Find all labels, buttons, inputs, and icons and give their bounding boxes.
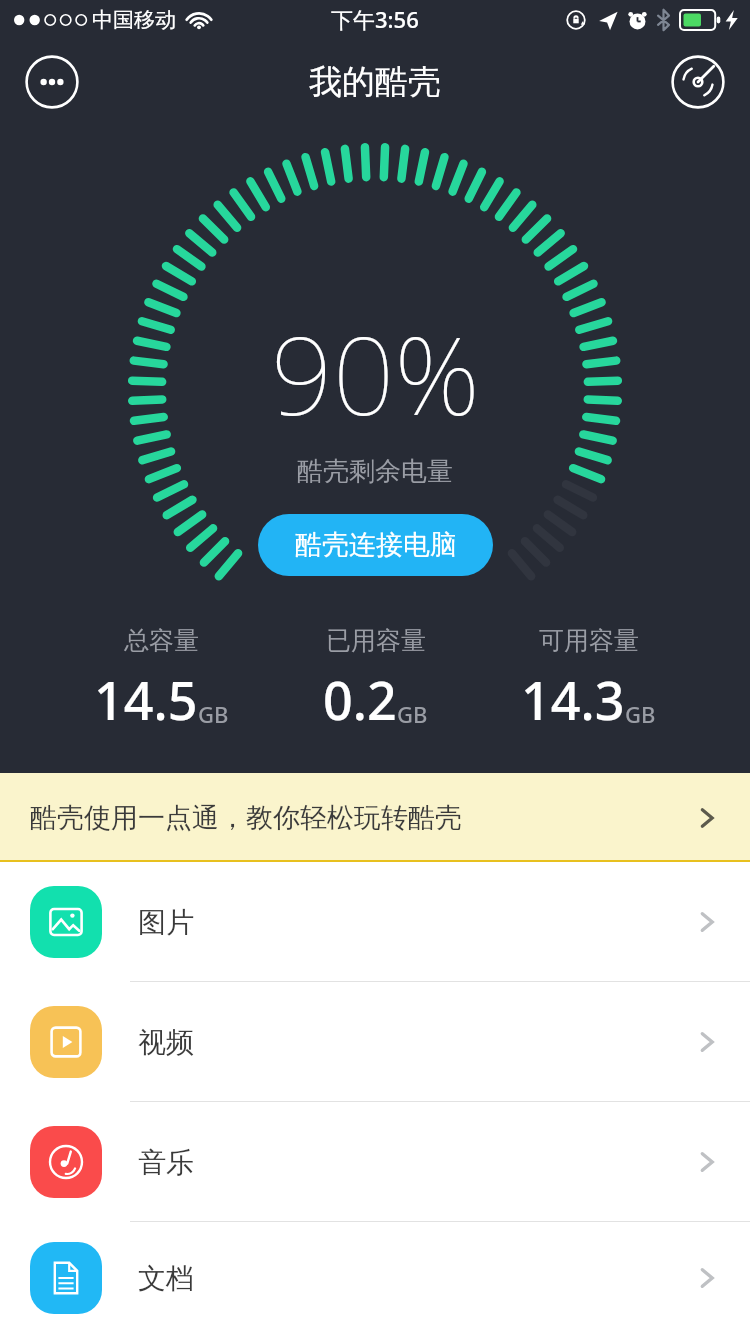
staticText: 0.2 [323,664,397,735]
staticText: 音乐 [138,1145,194,1180]
button[interactable]: 音乐 [0,1102,750,1222]
staticText: 14.5 [94,664,198,735]
staticText: 文档 [138,1261,194,1296]
staticText: 可用容量 [539,625,639,656]
staticText: 酷壳使用一点通，教你轻松玩转酷壳 [30,801,462,835]
staticText: 我的酷壳 [309,61,441,103]
staticText: 中国移动 [92,7,176,33]
button[interactable]: 图片 [0,862,750,982]
staticText: GB [198,699,229,729]
button[interactable]: Speed [671,55,725,109]
staticText: GB [397,699,428,729]
button[interactable]: 视频 [0,982,750,1102]
button[interactable]: 酷壳连接电脑 [258,514,493,576]
staticText: GB [625,699,656,729]
button[interactable]: 文档 [0,1222,750,1334]
button[interactable]: 酷壳使用一点通，教你轻松玩转酷壳 [0,773,750,862]
staticText: 14.3 [521,664,625,735]
staticText: 图片 [138,905,194,940]
staticText: 已用容量 [326,625,426,656]
button[interactable]: More options [25,55,79,109]
staticText: 视频 [138,1025,194,1060]
staticText: 酷壳剩余电量 [297,455,453,488]
staticText: 总容量 [124,625,199,656]
staticText: 下午3:56 [331,4,419,34]
staticText: 酷壳连接电脑 [295,528,457,562]
staticText: 90% [271,300,480,447]
